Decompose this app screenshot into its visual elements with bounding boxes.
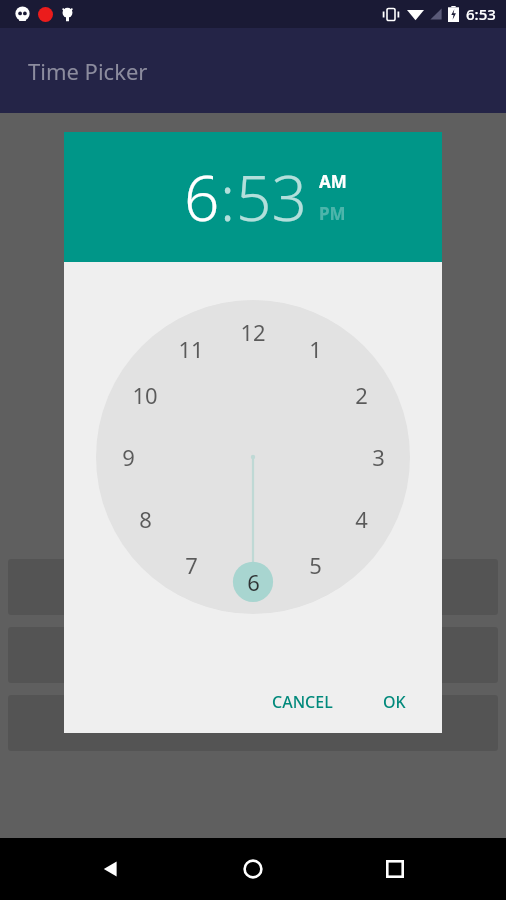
staticText: 53 — [236, 155, 307, 239]
button[interactable]: Home — [222, 838, 284, 900]
staticText: 9 — [122, 442, 135, 472]
staticText: 10 — [132, 380, 158, 410]
staticText: 5 — [309, 550, 322, 580]
staticText: 4 — [355, 504, 368, 534]
button[interactable]: Clock face, select hour — [96, 300, 410, 614]
button[interactable]: PM — [319, 202, 346, 225]
button[interactable]: OK — [369, 681, 420, 723]
staticText: 2 — [355, 380, 368, 410]
staticText: 6 — [247, 567, 260, 597]
staticText: 1 — [309, 334, 322, 364]
staticText: 7 — [185, 550, 198, 580]
staticText: Time Picker — [28, 56, 148, 86]
button[interactable]: 53 — [236, 155, 307, 239]
button[interactable]: 6 — [184, 155, 220, 239]
staticText: 3 — [372, 442, 385, 472]
staticText: CANCEL — [272, 691, 333, 713]
button[interactable]: CANCEL — [258, 681, 347, 723]
button[interactable]: AM — [319, 170, 347, 193]
staticText: 6:53 — [466, 4, 496, 24]
staticText: 6 — [184, 155, 220, 239]
staticText: 8 — [139, 504, 152, 534]
staticText: 12 — [240, 317, 266, 347]
staticText: 11 — [178, 334, 204, 364]
button[interactable]: Back — [80, 838, 142, 900]
button[interactable]: Recent apps — [364, 838, 426, 900]
staticText: AM — [319, 170, 347, 193]
staticText: OK — [383, 691, 406, 713]
staticText: PM — [319, 202, 346, 225]
staticText: : — [220, 155, 236, 239]
